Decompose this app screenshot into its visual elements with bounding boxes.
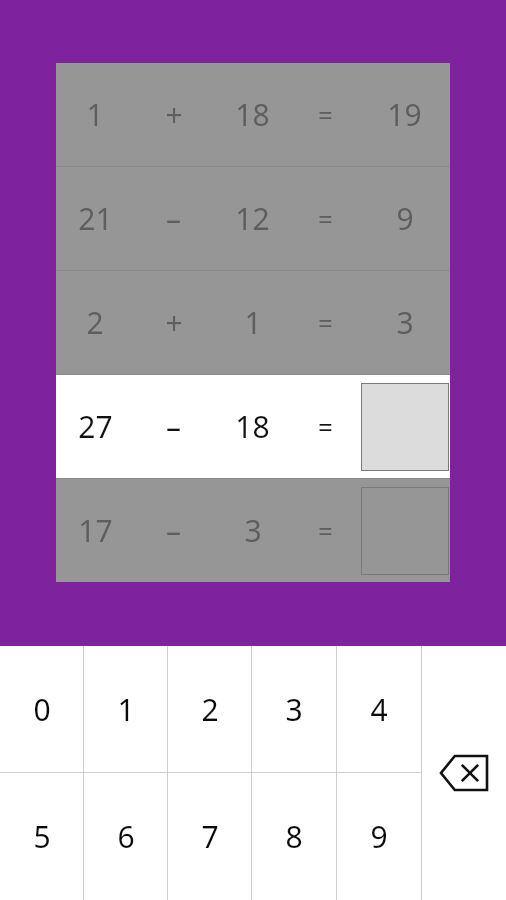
staticText: 17	[78, 510, 113, 551]
staticText: 9	[396, 198, 414, 239]
staticText: 7	[201, 816, 219, 857]
button[interactable]: 3	[252, 646, 336, 772]
staticText: =	[318, 97, 333, 132]
button[interactable]: 6	[84, 773, 167, 900]
staticText: 3	[244, 510, 262, 551]
button[interactable]: 8	[252, 773, 336, 900]
staticText: –	[166, 510, 181, 551]
staticText: 3	[396, 302, 414, 343]
staticText: 2	[201, 689, 219, 730]
staticText: 12	[235, 198, 270, 239]
staticText: 3	[285, 689, 303, 730]
staticText: 2	[86, 302, 104, 343]
staticText: 18	[235, 406, 270, 447]
button[interactable]: Backspace	[422, 646, 506, 900]
staticText: =	[318, 201, 333, 236]
staticText: 27	[78, 406, 113, 447]
button[interactable]	[361, 487, 449, 575]
button[interactable]	[361, 383, 449, 471]
staticText: –	[166, 198, 181, 239]
staticText: –	[166, 406, 181, 447]
button[interactable]: 1	[84, 646, 167, 772]
button[interactable]: 21	[56, 167, 450, 270]
staticText: 9	[370, 816, 388, 857]
staticText: 6	[117, 816, 135, 857]
staticText: 19	[387, 94, 422, 135]
staticText: +	[165, 302, 183, 343]
button[interactable]: 4	[337, 646, 421, 772]
button[interactable]: 2	[56, 271, 450, 374]
staticText: 5	[33, 816, 51, 857]
staticText: 4	[370, 689, 388, 730]
button[interactable]: 27	[56, 375, 450, 478]
staticText: =	[318, 513, 333, 548]
staticText: 8	[285, 816, 303, 857]
staticText: 1	[86, 94, 104, 135]
button[interactable]: 5	[0, 773, 83, 900]
staticText: 0	[33, 689, 51, 730]
button[interactable]: 7	[168, 773, 251, 900]
staticText: =	[318, 409, 333, 444]
staticText: +	[165, 94, 183, 135]
staticText: =	[318, 305, 333, 340]
button[interactable]: 0	[0, 646, 83, 772]
staticText: 21	[78, 198, 113, 239]
staticText: 1	[117, 689, 135, 730]
button[interactable]: 17	[56, 479, 450, 582]
staticText: 1	[244, 302, 262, 343]
button[interactable]: 9	[337, 773, 421, 900]
button[interactable]: 2	[168, 646, 251, 772]
button[interactable]: 1	[56, 63, 450, 166]
staticText: 18	[235, 94, 270, 135]
